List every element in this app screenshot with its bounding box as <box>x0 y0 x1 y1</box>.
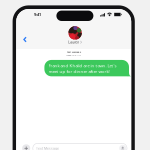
button[interactable]: Record audio message <box>119 145 126 150</box>
button[interactable]: Back <box>19 32 31 47</box>
staticText: Text Message <box>36 146 59 150</box>
staticText: Frank and Khalid are in town. Let's meet… <box>49 63 117 74</box>
staticText: Text Message <box>67 50 81 53</box>
staticText: Lauren <box>68 40 79 44</box>
staticText: 9:41 <box>34 12 41 17</box>
staticText: Today 9:41 AM <box>66 53 81 57</box>
button[interactable]: Add attachment <box>22 144 30 150</box>
